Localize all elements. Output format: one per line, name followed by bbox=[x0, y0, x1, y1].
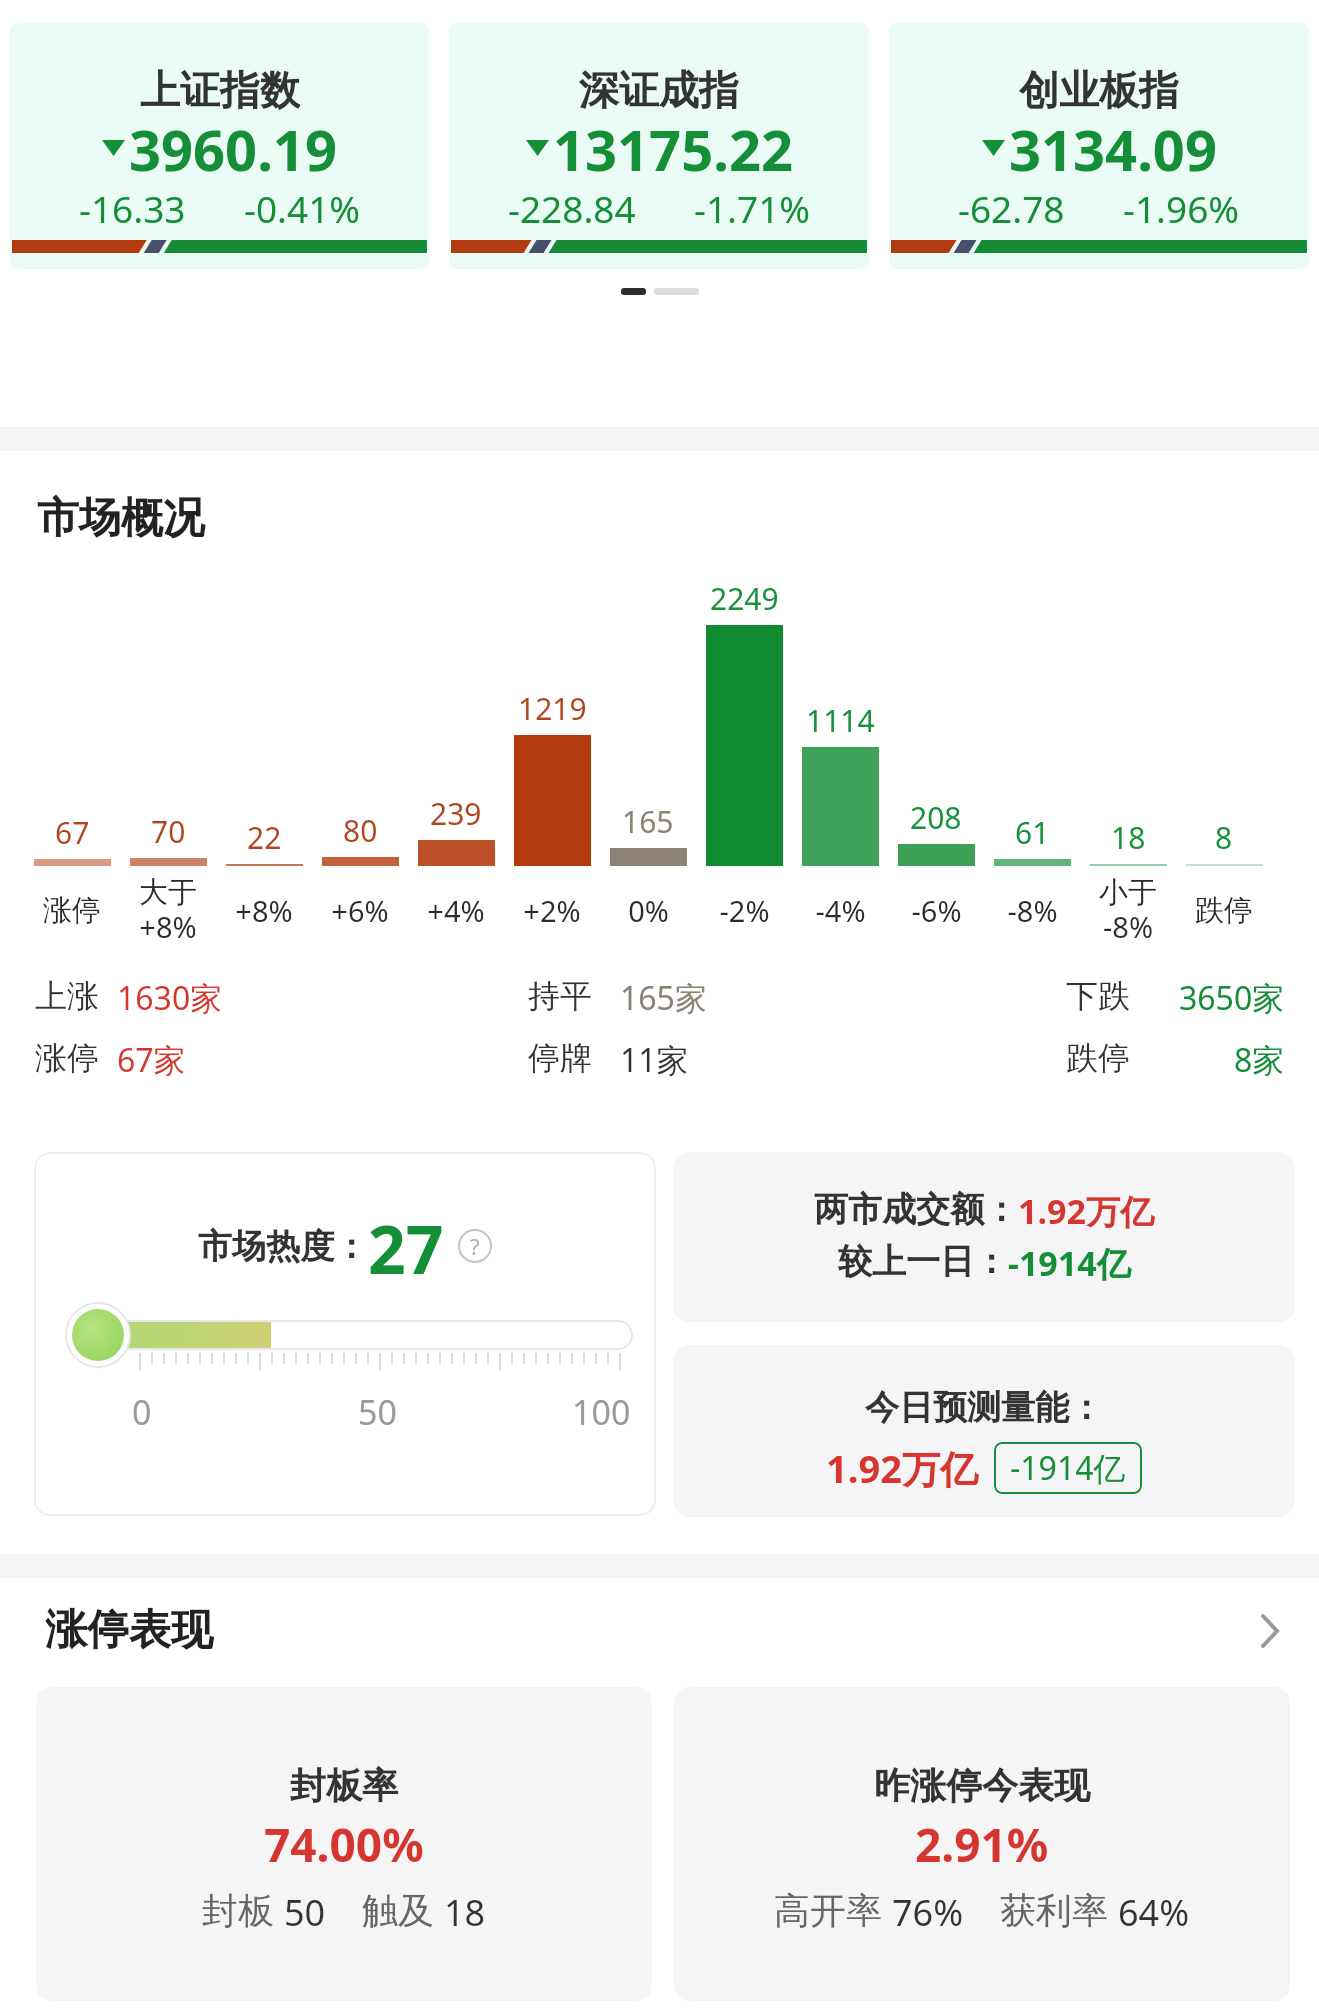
button[interactable]: 上证指数 bbox=[10, 23, 429, 269]
staticText: 0 bbox=[132, 1389, 152, 1435]
staticText: 高开率 bbox=[774, 1888, 882, 1933]
staticText: 1114 bbox=[806, 700, 875, 741]
staticText: +2% bbox=[523, 891, 581, 930]
staticText: 100 bbox=[572, 1389, 631, 1435]
staticText: 8 bbox=[1215, 817, 1233, 858]
staticText: 3650家 bbox=[1179, 976, 1285, 1020]
staticText: 18 bbox=[1111, 817, 1146, 858]
staticText: -8% bbox=[1007, 891, 1058, 930]
staticText: -16.33 bbox=[79, 183, 186, 231]
staticText: 80 bbox=[343, 810, 378, 851]
staticText: 小于 -8% bbox=[1099, 874, 1157, 946]
button[interactable]: 昨涨停今表现 bbox=[674, 1687, 1290, 2001]
staticText: 上证指数 bbox=[140, 65, 300, 110]
staticText: 76% bbox=[892, 1888, 964, 1937]
staticText: 触及 bbox=[362, 1888, 434, 1933]
staticText: 获利率 bbox=[1000, 1888, 1108, 1933]
staticText: 昨涨停今表现 bbox=[874, 1763, 1090, 1808]
staticText: -2% bbox=[719, 891, 770, 930]
staticText: 18 bbox=[444, 1888, 486, 1937]
staticText: -228.84 bbox=[508, 183, 636, 231]
staticText: 持平 bbox=[528, 976, 592, 1016]
staticText: 跌停 bbox=[1066, 1038, 1130, 1078]
staticText: 大于 +8% bbox=[139, 874, 197, 946]
staticText: 停牌 bbox=[528, 1038, 592, 1078]
staticText: 1.92万亿 bbox=[826, 1442, 978, 1494]
button[interactable]: 涨停表现 bbox=[45, 1604, 1279, 1657]
staticText: 涨停 bbox=[43, 892, 101, 929]
staticText: 239 bbox=[430, 793, 482, 834]
staticText: -6% bbox=[911, 891, 962, 930]
staticText: 创业板指 bbox=[1019, 65, 1179, 110]
staticText: 27 bbox=[368, 1203, 444, 1289]
staticText: 22 bbox=[247, 817, 282, 858]
staticText: 1630家 bbox=[117, 976, 223, 1020]
staticText: 3134.09 bbox=[1009, 111, 1217, 183]
staticText: -1.71% bbox=[694, 183, 811, 231]
staticText: 50 bbox=[358, 1389, 397, 1435]
staticText: -1914亿 bbox=[1008, 1240, 1131, 1286]
staticText: 8家 bbox=[1234, 1038, 1285, 1082]
button[interactable]: 封板率 bbox=[36, 1687, 652, 2001]
staticText: 跌停 bbox=[1195, 892, 1253, 929]
staticText: +6% bbox=[331, 891, 389, 930]
button[interactable]: 两市成交额： bbox=[673, 1152, 1295, 1322]
staticText: -4% bbox=[815, 891, 866, 930]
staticText: 165家 bbox=[620, 976, 707, 1020]
staticText: +4% bbox=[427, 891, 485, 930]
staticText: 2249 bbox=[710, 578, 779, 619]
staticText: 3960.19 bbox=[129, 111, 337, 183]
staticText: 2.91% bbox=[915, 1813, 1049, 1876]
staticText: 涨停表现 bbox=[45, 1604, 213, 1657]
button[interactable]: 市场热度： bbox=[34, 1152, 656, 1516]
staticText: 165 bbox=[622, 801, 674, 842]
staticText: 较上一日： bbox=[838, 1240, 1008, 1283]
button[interactable]: 深证成指 bbox=[449, 23, 869, 269]
staticText: 今日预测量能： bbox=[865, 1386, 1103, 1429]
staticText: ? bbox=[470, 1231, 480, 1261]
staticText: 64% bbox=[1118, 1888, 1190, 1937]
staticText: 上涨 bbox=[35, 976, 99, 1016]
staticText: 封板率 bbox=[290, 1763, 398, 1808]
staticText: 1219 bbox=[518, 688, 587, 729]
staticText: 13175.22 bbox=[553, 111, 793, 183]
staticText: 市场热度： bbox=[198, 1225, 368, 1268]
staticText: 1.92万亿 bbox=[1018, 1188, 1154, 1234]
staticText: 封板 bbox=[202, 1888, 274, 1933]
staticText: 70 bbox=[151, 811, 186, 852]
staticText: 两市成交额： bbox=[814, 1188, 1018, 1231]
staticText: 61 bbox=[1015, 812, 1050, 853]
staticText: 67 bbox=[55, 812, 90, 853]
staticText: 深证成指 bbox=[579, 65, 739, 110]
staticText: 67家 bbox=[117, 1038, 186, 1082]
button[interactable]: 今日预测量能： bbox=[673, 1345, 1295, 1517]
staticText: 市场概况 bbox=[37, 492, 205, 545]
staticText: 0% bbox=[628, 891, 669, 930]
staticText: -0.41% bbox=[244, 183, 361, 231]
button[interactable]: 创业板指 bbox=[889, 23, 1309, 269]
staticText: 50 bbox=[284, 1888, 326, 1937]
staticText: 74.00% bbox=[264, 1813, 424, 1876]
staticText: +8% bbox=[235, 891, 293, 930]
staticText: -62.78 bbox=[958, 183, 1065, 231]
staticText: 11家 bbox=[620, 1038, 689, 1082]
staticText: 208 bbox=[910, 797, 962, 838]
staticText: -1914亿 bbox=[1010, 1446, 1126, 1490]
staticText: 涨停 bbox=[35, 1038, 99, 1078]
staticText: -1.96% bbox=[1123, 183, 1240, 231]
staticText: 下跌 bbox=[1066, 976, 1130, 1016]
